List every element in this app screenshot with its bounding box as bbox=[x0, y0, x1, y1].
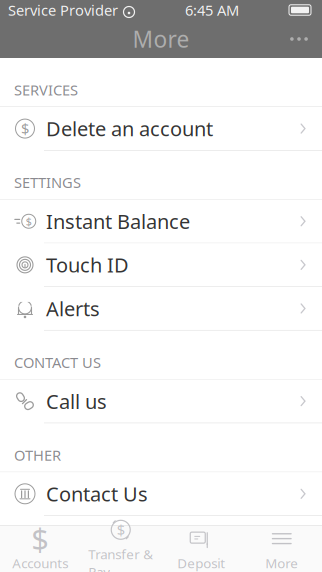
staticText: CONTACT US bbox=[14, 353, 101, 372]
staticText: 6:45 AM bbox=[185, 0, 239, 20]
staticText: Service Provider bbox=[8, 0, 118, 20]
staticText: $ bbox=[31, 518, 49, 559]
button[interactable]: $ bbox=[0, 526, 80, 572]
staticText: $ bbox=[21, 119, 29, 138]
staticText: Transfer & Pay bbox=[88, 545, 153, 572]
button[interactable]: $ bbox=[0, 107, 322, 150]
button[interactable]: Touch ID bbox=[0, 243, 322, 286]
staticText: Touch ID bbox=[46, 252, 129, 278]
staticText: Contact Us bbox=[46, 480, 148, 507]
staticText: Accounts bbox=[12, 554, 68, 572]
staticText: OTHER bbox=[14, 445, 61, 465]
staticText: $ bbox=[117, 520, 125, 540]
button[interactable]: $ bbox=[80, 526, 161, 572]
staticText: $ bbox=[26, 214, 32, 228]
staticText: Alerts bbox=[46, 295, 100, 322]
staticText: Deposit bbox=[177, 554, 225, 572]
staticText: Instant Balance bbox=[46, 208, 190, 235]
button[interactable]: Alerts bbox=[0, 287, 322, 330]
staticText: More bbox=[265, 554, 298, 572]
button[interactable]: Contact Us bbox=[0, 472, 322, 515]
staticText: SERVICES bbox=[14, 80, 78, 99]
button[interactable]: Call us bbox=[0, 380, 322, 423]
staticText: SETTINGS bbox=[14, 173, 81, 192]
button[interactable]: $ bbox=[0, 200, 322, 243]
button[interactable]: Deposit bbox=[161, 526, 241, 572]
staticText: Call us bbox=[46, 388, 107, 414]
staticText: More bbox=[132, 24, 189, 54]
button[interactable]: More bbox=[241, 526, 322, 572]
staticText: Delete an account bbox=[46, 115, 213, 142]
button[interactable]: More options bbox=[276, 20, 322, 58]
